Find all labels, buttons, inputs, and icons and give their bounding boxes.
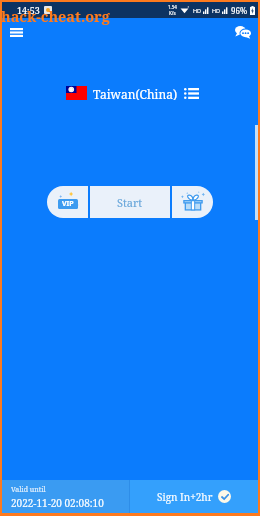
button[interactable]: Chat support [233,22,253,42]
button[interactable]: Gift [172,186,213,218]
staticText: 96% [231,5,248,16]
button[interactable]: Server list [183,86,200,100]
button[interactable]: Sign In+2hr [130,480,258,513]
staticText: HD [212,7,221,14]
staticText: Sign In+2hr [157,490,213,504]
staticText: K/s [169,10,176,16]
staticText: VIP [62,199,74,209]
button[interactable]: Start [90,186,170,218]
staticText: 1.54 [168,4,177,10]
button[interactable]: Menu [6,22,26,42]
staticText: 2022-11-20 02:08:10 [11,496,104,510]
staticText: Taiwan(China) [93,86,178,100]
staticText: 14:53 [17,4,40,16]
staticText: HD [193,7,202,14]
button[interactable]: VIP [47,186,88,218]
button[interactable]: Valid until [2,480,129,513]
staticText: Start [117,195,143,210]
staticText: hack-cheat.org [1,6,110,26]
staticText: Valid until [11,485,46,495]
